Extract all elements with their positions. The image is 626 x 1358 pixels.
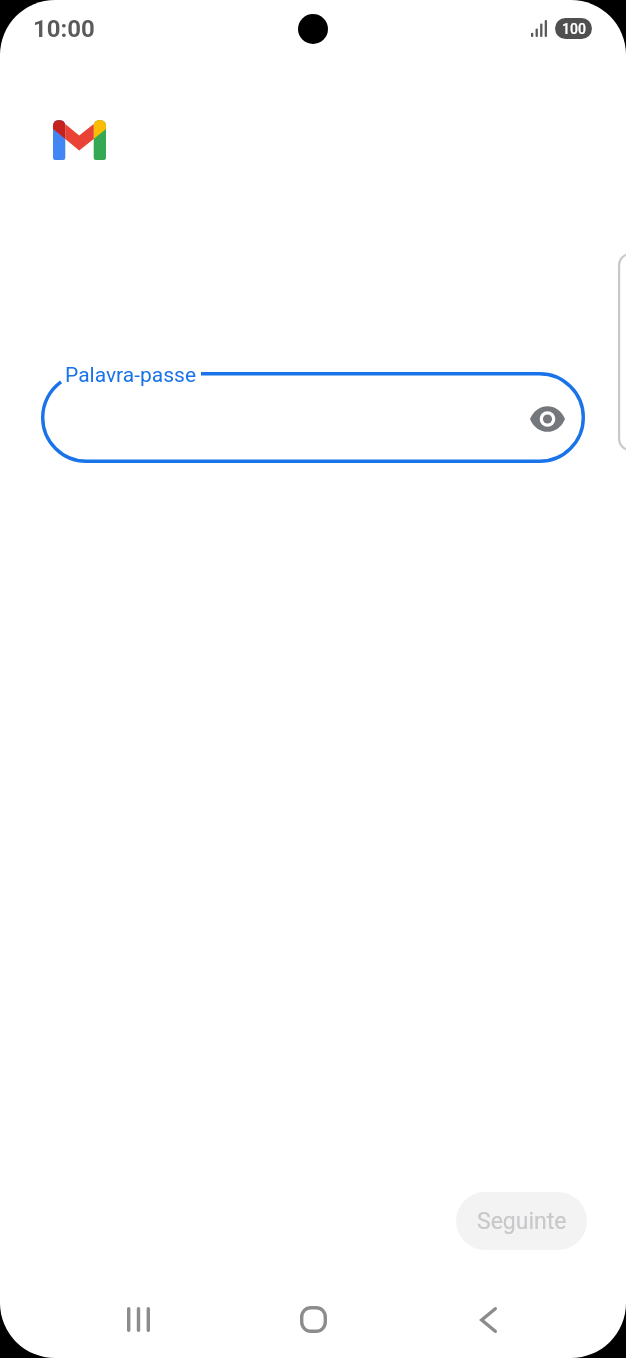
staticText: 100 bbox=[562, 21, 586, 37]
staticText: 10:00 bbox=[33, 15, 95, 43]
staticText: Palavra-passe bbox=[65, 363, 197, 388]
button[interactable]: Palavra-passe bbox=[41, 372, 585, 463]
button[interactable]: Mostrar palavra-passe bbox=[523, 394, 572, 443]
button[interactable]: Recentes bbox=[92, 1273, 185, 1358]
button[interactable]: Ecrã principal bbox=[267, 1273, 360, 1358]
button[interactable]: Seguinte bbox=[456, 1192, 587, 1250]
staticText: Seguinte bbox=[477, 1208, 567, 1235]
button[interactable]: Voltar bbox=[442, 1273, 535, 1358]
